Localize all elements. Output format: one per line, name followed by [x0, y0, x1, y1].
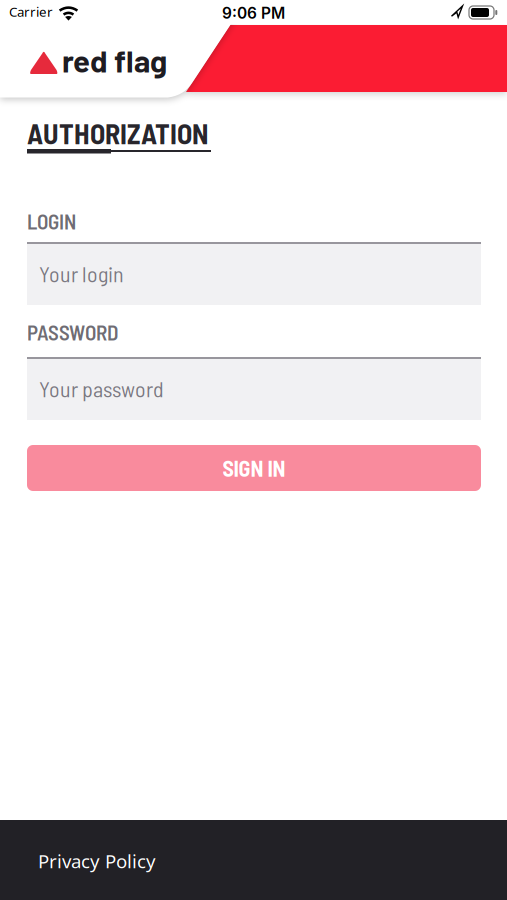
staticText: red flag — [62, 41, 167, 79]
staticText: Your login — [39, 260, 124, 287]
staticText: PASSWORD — [27, 319, 118, 345]
staticText: Privacy Policy — [38, 849, 156, 873]
button[interactable]: Login text field — [27, 242, 481, 305]
staticText: AUTHORIZATION — [27, 116, 209, 150]
staticText: Your password — [39, 375, 164, 402]
button[interactable]: Password text field — [27, 357, 481, 420]
staticText: 9:06 PM — [222, 4, 285, 22]
staticText: SIGN IN — [222, 455, 285, 481]
button[interactable]: Privacy Policy — [38, 849, 156, 873]
button[interactable]: SIGN IN — [27, 445, 481, 491]
staticText: Carrier — [9, 3, 53, 20]
staticText: LOGIN — [27, 208, 76, 234]
